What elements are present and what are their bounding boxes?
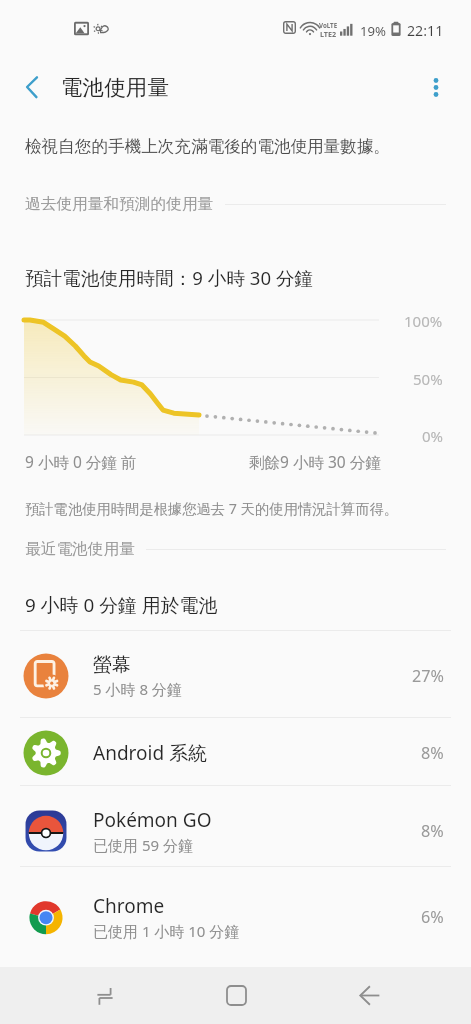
button[interactable]: Pokémon GO	[0, 785, 471, 866]
staticText: 已使用 1 小時 10 分鐘	[93, 921, 240, 941]
staticText: LTE2	[320, 29, 337, 39]
staticText: 8%	[421, 820, 444, 842]
staticText: 已使用 59 分鐘	[93, 835, 193, 855]
button[interactable]: Back	[339, 967, 399, 1024]
staticText: 27%	[412, 665, 444, 687]
staticText: 100%	[404, 311, 443, 331]
staticText: 預計電池使用時間：9 小時 30 分鐘	[25, 265, 314, 290]
staticText: 螢幕	[93, 653, 131, 677]
staticText: 6%	[421, 906, 444, 928]
staticText: 預計電池使用時間是根據您過去 7 天的使用情況計算而得。	[25, 499, 399, 519]
button[interactable]: Home	[206, 967, 266, 1024]
staticText: 0%	[422, 426, 444, 446]
staticText: Pokémon GO	[93, 807, 212, 833]
staticText: 電池使用量	[61, 74, 169, 101]
staticText: 9 小時 0 分鐘 前	[25, 451, 137, 472]
staticText: 剩餘9 小時 30 分鐘	[249, 451, 381, 472]
staticText: 檢視自您的手機上次充滿電後的電池使用量數據。	[25, 136, 391, 157]
staticText: 5 小時 8 分鐘	[93, 679, 182, 699]
button[interactable]: Chrome	[0, 866, 471, 967]
staticText: 最近電池使用量	[25, 539, 135, 559]
staticText: VoLTE	[319, 21, 338, 29]
staticText: 50%	[413, 369, 443, 389]
button[interactable]: Back	[10, 66, 52, 108]
button[interactable]: 螢幕	[0, 630, 471, 717]
button[interactable]: Android 系統	[0, 717, 471, 785]
button[interactable]: More options	[415, 66, 457, 108]
staticText: 8%	[421, 742, 444, 764]
staticText: 19%	[360, 22, 387, 40]
staticText: 過去使用量和預測的使用量	[25, 194, 214, 214]
staticText: Chrome	[93, 893, 165, 919]
staticText: Android 系統	[93, 740, 208, 766]
button[interactable]: Recents	[75, 967, 135, 1024]
staticText: 9 小時 0 分鐘 用於電池	[25, 592, 218, 618]
staticText: 22:11	[407, 21, 444, 40]
